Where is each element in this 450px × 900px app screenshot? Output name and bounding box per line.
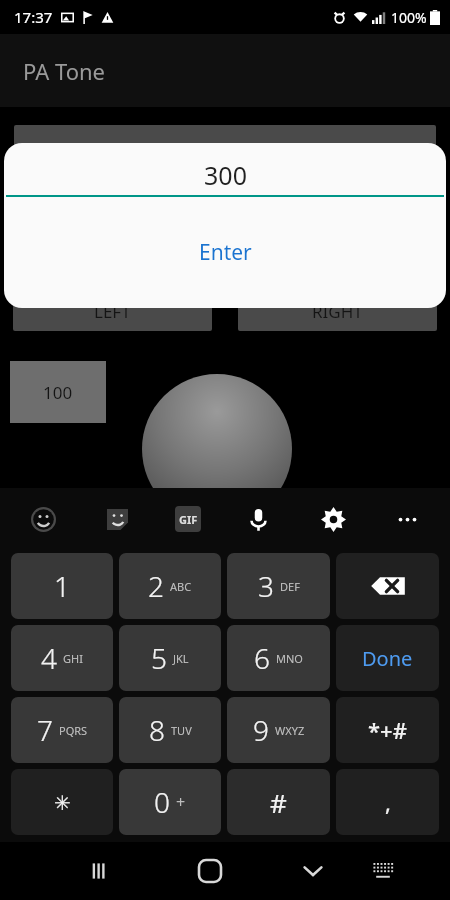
staticText: GIF [179, 512, 198, 527]
button[interactable]: 5 [119, 625, 221, 691]
button[interactable]: 6 [227, 625, 330, 691]
staticText: WXYZ [275, 723, 305, 738]
button[interactable]: FREQUENCY [14, 125, 436, 185]
button[interactable]: Done [336, 625, 439, 691]
button[interactable]: 1 [11, 553, 113, 619]
staticText: JKL [173, 651, 189, 666]
button[interactable]: ✳ [11, 769, 113, 835]
button[interactable]: RIGHT [238, 291, 437, 331]
staticText: 300 [204, 158, 247, 192]
staticText: 17:37 [14, 7, 53, 27]
button[interactable]: Home [188, 849, 232, 893]
staticText: PA Tone [23, 56, 105, 86]
button[interactable]: 9 [227, 697, 330, 763]
button[interactable]: Stickers [100, 502, 134, 536]
button[interactable]: Change keyboard [362, 849, 406, 893]
button[interactable]: Recent apps [79, 849, 123, 893]
staticText: 8 [149, 711, 165, 749]
button[interactable]: 2 [119, 553, 221, 619]
staticText: Done [362, 645, 413, 672]
staticText: 5 [151, 639, 167, 677]
button[interactable]: , [336, 769, 439, 835]
button[interactable]: More options [390, 502, 424, 536]
button[interactable]: 8 [119, 697, 221, 763]
staticText: , [385, 787, 391, 817]
staticText: # [270, 785, 287, 820]
button[interactable]: Enter [4, 197, 446, 308]
staticText: 4 [41, 639, 57, 677]
staticText: RIGHT [312, 300, 363, 323]
staticText: TUV [171, 723, 192, 738]
staticText: ✳ [54, 791, 71, 814]
staticText: 0 [154, 783, 170, 821]
staticText: 100 [43, 381, 73, 404]
button[interactable]: Backspace [336, 553, 439, 619]
staticText: 7 [37, 711, 53, 749]
staticText: 2 [148, 567, 164, 605]
staticText: *+# [368, 715, 407, 745]
button[interactable]: 4 [11, 625, 113, 691]
staticText: 6 [254, 639, 270, 677]
button[interactable]: *+# [336, 697, 439, 763]
staticText: LEFT [94, 300, 131, 323]
staticText: MNO [276, 651, 303, 666]
staticText: PQRS [59, 723, 88, 738]
staticText: 100% [391, 8, 427, 27]
button[interactable]: 0 [119, 769, 221, 835]
button[interactable]: Settings [316, 502, 350, 536]
button[interactable]: 3 [227, 553, 330, 619]
staticText: DEF [280, 579, 300, 594]
staticText: 9 [253, 711, 269, 749]
staticText: ABC [170, 579, 192, 594]
staticText: 3 [258, 567, 274, 605]
staticText: 1 [54, 567, 70, 605]
button[interactable]: 100 [10, 361, 106, 423]
staticText: GHI [63, 651, 83, 666]
button[interactable]: 7 [11, 697, 113, 763]
staticText: + [176, 791, 186, 813]
button[interactable]: LEFT [13, 291, 212, 331]
staticText: Enter [199, 238, 252, 267]
button[interactable]: Emoji [26, 502, 60, 536]
button[interactable]: GIF [175, 506, 201, 532]
button[interactable]: # [227, 769, 330, 835]
button[interactable]: Hide keyboard [291, 849, 335, 893]
button[interactable]: Voice input [241, 502, 275, 536]
